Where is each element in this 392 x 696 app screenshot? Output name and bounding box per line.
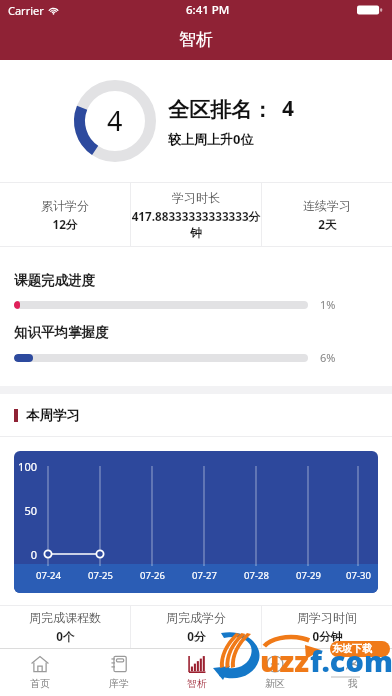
staticText: 50 (24, 503, 37, 518)
staticText: 07-27 (192, 569, 217, 582)
staticText: 我 (348, 677, 358, 690)
staticText: 东坡下载 (332, 642, 372, 655)
button[interactable]: Home (0, 649, 79, 696)
button[interactable]: 累计学分 (0, 183, 130, 246)
staticText: 07-28 (244, 569, 269, 582)
other: New area (266, 655, 284, 673)
staticText: f.com (310, 641, 392, 680)
button[interactable]: Profile (314, 649, 392, 696)
staticText: 新区 (265, 677, 285, 690)
staticText: 100 (18, 459, 37, 474)
staticText: uzz (260, 641, 309, 680)
staticText: 学习时长 (172, 190, 220, 205)
staticText: 全区排名： (168, 97, 273, 123)
button[interactable]: 周学习时间 (262, 606, 392, 648)
staticText: 庠学 (109, 677, 129, 690)
staticText: 0分 (187, 628, 206, 644)
staticText: 首页 (30, 677, 50, 690)
other: Courses (110, 655, 128, 673)
button[interactable]: 连续学习 (262, 183, 392, 246)
button[interactable]: 周完成学分 (131, 606, 261, 648)
button[interactable]: Analysis (158, 649, 236, 696)
staticText: 07-30 (346, 569, 371, 582)
staticText: 累计学分 (41, 198, 89, 213)
staticText: 周完成课程数 (29, 610, 101, 625)
staticText: 0个 (56, 628, 75, 644)
staticText: 12分 (52, 216, 78, 232)
staticText: 0 (30, 547, 37, 562)
staticText: 课题完成进度 (14, 272, 95, 289)
staticText: 0分钟 (312, 628, 343, 644)
staticText: 4 (107, 102, 123, 139)
button[interactable]: 学习时长 (131, 183, 261, 246)
staticText: 周学习时间 (297, 610, 357, 625)
staticText: 本周学习 (26, 407, 80, 424)
staticText: 智析 (179, 29, 213, 50)
staticText: 6% (320, 350, 336, 365)
staticText: 4 (282, 94, 295, 123)
other: Analysis (188, 655, 206, 673)
staticText: 07-26 (140, 569, 165, 582)
staticText: 周完成学分 (166, 610, 226, 625)
button[interactable]: Courses (79, 649, 158, 696)
staticText: 知识平均掌握度 (14, 324, 109, 341)
staticText: Carrier (8, 3, 44, 18)
staticText: 6:41 PM (186, 2, 230, 18)
staticText: 417.88333333333333分钟 (131, 208, 261, 240)
staticText: 07-29 (296, 569, 321, 582)
staticText: 07-25 (88, 569, 113, 582)
staticText: 智析 (187, 677, 207, 690)
staticText: 07-24 (36, 569, 61, 582)
staticText: 较上周上升0位 (168, 130, 254, 148)
button[interactable]: 周完成课程数 (0, 606, 130, 648)
staticText: 连续学习 (303, 198, 351, 213)
staticText: 2天 (318, 216, 337, 232)
other: Home (31, 655, 49, 673)
staticText: 1% (320, 297, 336, 312)
other: Profile (344, 655, 362, 673)
button[interactable]: New area (236, 649, 314, 696)
